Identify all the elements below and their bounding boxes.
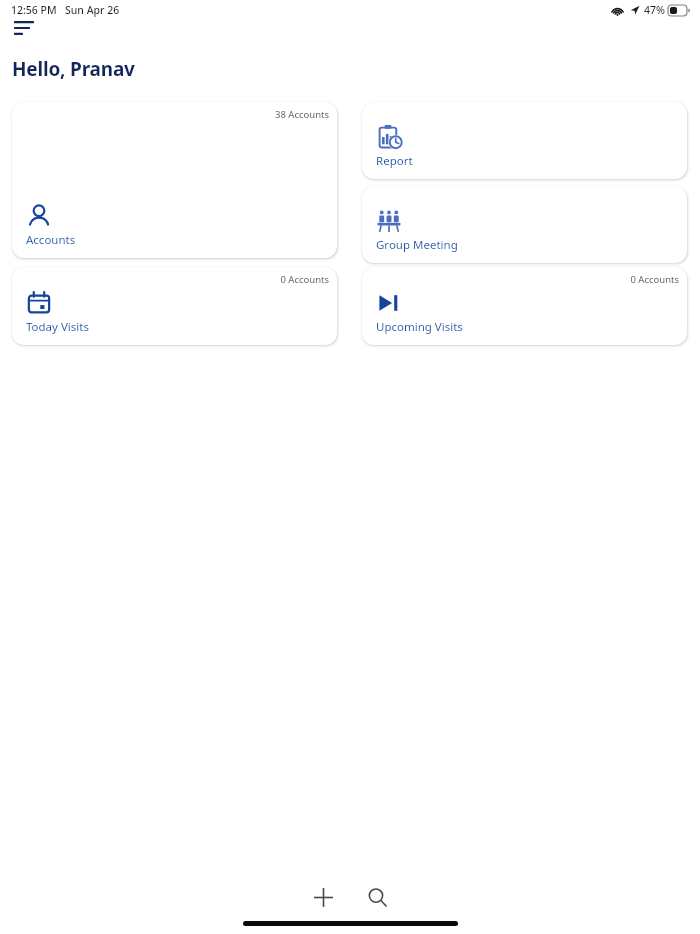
button[interactable]: Report	[362, 102, 687, 179]
staticText: Upcoming Visits	[376, 319, 463, 335]
button[interactable]: 0 Accounts	[362, 267, 687, 345]
staticText: Group Meeting	[376, 237, 458, 253]
staticText: Report	[376, 153, 413, 169]
button[interactable]: 38 Accounts	[12, 102, 337, 258]
button[interactable]: 0 Accounts	[12, 267, 337, 345]
button[interactable]: Group Meeting	[362, 186, 687, 263]
button[interactable]: Add	[302, 876, 344, 918]
button[interactable]: Search	[356, 876, 398, 918]
staticText: Hello, Pranav	[12, 56, 135, 82]
staticText: Accounts	[26, 232, 76, 248]
staticText: Today Visits	[26, 319, 89, 335]
staticText: Sun Apr 26	[65, 3, 120, 17]
staticText: 0 Accounts	[630, 273, 679, 286]
button[interactable]: Menu	[6, 14, 42, 42]
staticText: 12:56 PM	[11, 3, 57, 17]
staticText: 38 Accounts	[275, 108, 329, 121]
staticText: 0 Accounts	[280, 273, 329, 286]
staticText: 47%	[644, 3, 665, 17]
